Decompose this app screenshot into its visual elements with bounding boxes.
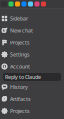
staticText: Artifacts	[10, 95, 31, 103]
button[interactable]: Artifacts	[0, 93, 64, 105]
staticText: Settings	[10, 51, 30, 58]
button[interactable]: Settings	[0, 48, 64, 60]
staticText: Projects	[10, 107, 30, 115]
button[interactable]: Account	[0, 60, 64, 72]
button[interactable]: Projects	[0, 105, 64, 117]
staticText: Account	[10, 63, 30, 70]
staticText: New chat	[10, 27, 33, 34]
button[interactable]: Sidebar	[0, 12, 64, 24]
staticText: Projects	[10, 39, 30, 46]
staticText: History	[10, 83, 28, 91]
staticText: Sidebar	[10, 15, 28, 22]
button[interactable]: Projects	[0, 36, 64, 48]
button[interactable]: History	[0, 81, 64, 93]
staticText: Reply to Claude	[5, 73, 41, 81]
button[interactable]: New chat	[0, 24, 64, 36]
